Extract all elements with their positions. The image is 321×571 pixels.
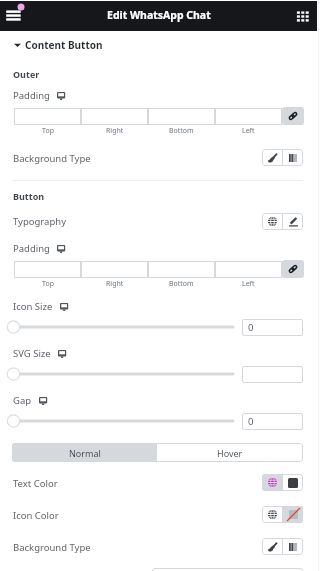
button[interactable]: [242, 366, 303, 383]
button[interactable]: Gap: [0, 412, 240, 430]
button[interactable]: Icon Size: [0, 318, 240, 336]
staticText: SVG Size: [13, 347, 51, 359]
button[interactable]: [81, 108, 148, 125]
staticText: Gap: [13, 394, 32, 406]
staticText: Icon Size: [13, 300, 53, 312]
staticText: Left: [242, 126, 255, 136]
staticText: Right: [106, 279, 124, 289]
button[interactable]: Normal: [12, 443, 157, 462]
staticText: Left: [242, 279, 255, 289]
staticText: Top: [42, 126, 54, 136]
button[interactable]: 0: [242, 319, 303, 336]
staticText: Right: [106, 126, 124, 136]
button[interactable]: Hover: [157, 443, 303, 462]
staticText: Normal: [69, 447, 101, 459]
button[interactable]: Content Button: [14, 38, 103, 51]
staticText: Top: [42, 279, 54, 289]
button[interactable]: Option 2: [283, 538, 303, 555]
button[interactable]: Option 1: [262, 474, 282, 491]
button[interactable]: Option 2: [283, 213, 303, 230]
staticText: Background Type: [13, 152, 91, 164]
button[interactable]: [81, 261, 148, 278]
button[interactable]: Apps: [296, 10, 309, 22]
button[interactable]: [148, 108, 215, 125]
button[interactable]: Option 1: [262, 149, 282, 166]
button[interactable]: [215, 108, 282, 125]
button[interactable]: Menu: [5, 5, 23, 25]
staticText: Padding: [13, 89, 50, 101]
staticText: Edit WhatsApp Chat: [107, 8, 211, 22]
staticText: 0: [248, 321, 254, 334]
button[interactable]: Option 1: [262, 213, 282, 230]
staticText: Icon Color: [13, 509, 59, 521]
staticText: Bottom: [169, 279, 194, 289]
staticText: Outer: [13, 68, 40, 80]
button[interactable]: [152, 568, 303, 571]
button[interactable]: SVG Size: [0, 365, 240, 383]
button[interactable]: 0: [242, 413, 303, 430]
button[interactable]: [148, 261, 215, 278]
staticText: Hover: [217, 447, 243, 459]
button[interactable]: Link values: [282, 260, 304, 278]
button[interactable]: [14, 108, 81, 125]
button[interactable]: [215, 261, 282, 278]
staticText: Button: [13, 190, 45, 202]
staticText: Typography: [13, 215, 66, 227]
staticText: Background Type: [13, 541, 91, 553]
button[interactable]: Link values: [282, 107, 304, 125]
button[interactable]: Option 2: [283, 474, 303, 491]
staticText: 0: [248, 415, 254, 428]
button[interactable]: Option 1: [262, 538, 282, 555]
staticText: Padding: [13, 242, 50, 254]
staticText: Text Color: [13, 477, 58, 489]
staticText: Bottom: [169, 126, 194, 136]
button[interactable]: [14, 261, 81, 278]
button[interactable]: Option 2: [283, 149, 303, 166]
button[interactable]: Option 1: [262, 506, 282, 523]
staticText: Content Button: [25, 38, 103, 51]
button[interactable]: Option 2: [283, 506, 303, 523]
